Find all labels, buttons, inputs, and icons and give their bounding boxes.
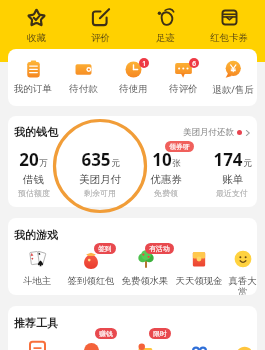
staticText: 我的订单	[14, 83, 52, 95]
button[interactable]: More	[226, 338, 257, 350]
staticText: 我的钱包	[14, 125, 58, 139]
staticText: 天天领现金	[172, 275, 226, 287]
button[interactable]: Limited offer	[118, 338, 172, 350]
staticText: 元	[243, 158, 252, 169]
button[interactable]: 待付款	[58, 60, 108, 95]
staticText: 有活动	[149, 244, 170, 253]
button[interactable]: 美团月付还款	[183, 127, 251, 138]
button[interactable]: 我的订单	[8, 60, 58, 95]
button[interactable]: 20	[0, 148, 67, 198]
staticText: 预估额度	[18, 188, 50, 198]
button[interactable]: 签到	[64, 248, 118, 287]
button[interactable]: 6	[158, 60, 208, 95]
button[interactable]: 斗地主	[10, 248, 64, 287]
staticText: 退款/售后	[212, 83, 254, 96]
staticText: 20	[19, 148, 39, 171]
staticText: 领券呀	[169, 142, 190, 151]
staticText: 足迹	[156, 32, 175, 44]
staticText: 限时	[153, 329, 167, 338]
button[interactable]: 174	[199, 148, 265, 198]
button[interactable]: 1	[108, 60, 158, 95]
staticText: 剩余可用	[84, 188, 116, 198]
button[interactable]: 635	[67, 148, 133, 198]
staticText: 张	[172, 158, 181, 169]
button[interactable]: 收藏	[7, 0, 65, 44]
staticText: 美团月付还款	[183, 127, 234, 138]
staticText: 账单	[222, 173, 243, 186]
staticText: 签到	[98, 244, 112, 253]
staticText: 元	[111, 158, 120, 169]
button[interactable]: 红包卡券	[200, 0, 258, 44]
staticText: 红包卡券	[210, 32, 248, 44]
staticText: 1	[142, 59, 146, 68]
staticText: 待付款	[69, 83, 98, 95]
button[interactable]: 退款/售后	[208, 60, 257, 96]
staticText: 赚钱	[99, 329, 113, 338]
staticText: 635	[81, 148, 111, 171]
button[interactable]: 天天领现金	[172, 248, 226, 287]
staticText: 10	[152, 148, 172, 171]
staticText: 我的游戏	[14, 228, 58, 242]
staticText: 借钱	[23, 173, 44, 186]
staticText: 推荐工具	[14, 316, 58, 330]
button[interactable]: Partner	[172, 338, 226, 350]
button[interactable]: 真香大赏	[226, 248, 257, 295]
staticText: 6	[192, 59, 196, 68]
button[interactable]: Earn	[64, 338, 118, 350]
staticText: 美团月付	[79, 173, 121, 186]
staticText: 斗地主	[10, 275, 64, 287]
button[interactable]: 10	[133, 148, 199, 198]
button[interactable]: 评价	[71, 0, 129, 44]
staticText: 签到领红包	[64, 275, 118, 287]
button[interactable]: Tasks	[10, 338, 64, 350]
staticText: 真香大赏	[226, 275, 257, 295]
staticText: 174	[213, 148, 243, 171]
staticText: 待使用	[119, 83, 148, 95]
staticText: 收藏	[27, 32, 46, 44]
button[interactable]: 足迹	[136, 0, 194, 44]
staticText: 待评价	[169, 83, 198, 95]
staticText: 最近支付	[216, 188, 248, 198]
staticText: 评价	[91, 32, 110, 44]
staticText: 免费领	[154, 188, 178, 198]
staticText: 万	[39, 158, 48, 169]
staticText: 优惠券	[150, 173, 182, 186]
button[interactable]: 有活动	[118, 248, 172, 287]
staticText: 免费领水果	[118, 275, 172, 287]
